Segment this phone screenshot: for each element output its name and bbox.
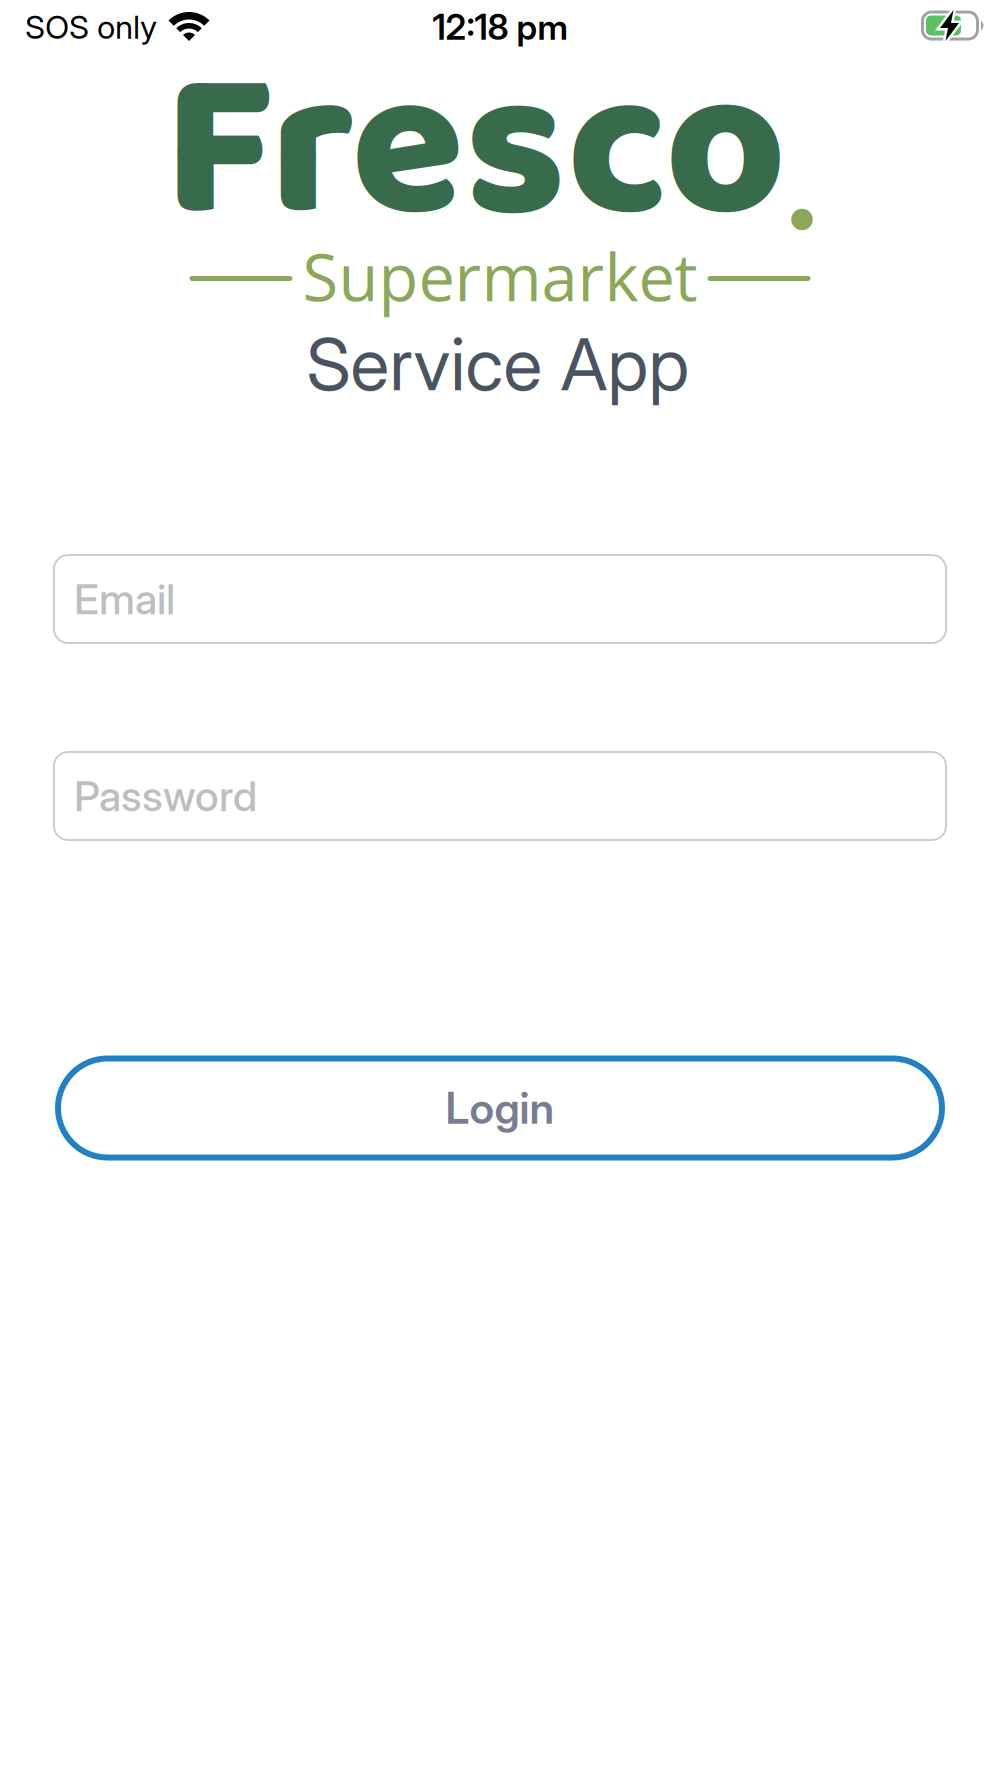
button[interactable]: Password (53, 751, 947, 841)
button[interactable]: Login (55, 1055, 945, 1160)
button[interactable]: Email (53, 554, 947, 644)
staticText: Email (74, 574, 175, 624)
staticText: SOS only (25, 8, 157, 46)
staticText: Password (74, 771, 257, 821)
staticText: 12:18 pm (432, 6, 567, 48)
staticText: Login (445, 1082, 554, 1134)
staticText: Fresco (164, 0, 786, 318)
staticText: Supermarket (302, 232, 697, 320)
staticText: Service App (306, 320, 689, 407)
